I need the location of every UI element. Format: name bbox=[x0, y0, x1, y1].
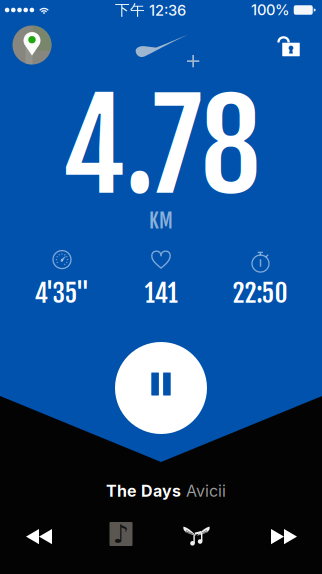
button[interactable]: Pause bbox=[115, 342, 207, 434]
button[interactable]: Previous track bbox=[15, 518, 63, 556]
staticText: Avicii bbox=[186, 481, 226, 501]
staticText: 4'35" bbox=[34, 277, 89, 309]
button[interactable]: Map bbox=[6, 19, 57, 70]
button[interactable]: Next track bbox=[260, 518, 308, 556]
staticText: 下午 12:36 bbox=[115, 1, 186, 19]
staticText: 22:50 bbox=[232, 277, 287, 309]
staticText: 100% bbox=[251, 1, 290, 19]
staticText: ♪ bbox=[113, 519, 129, 549]
staticText: 141 bbox=[144, 277, 177, 309]
button[interactable]: Unlock bbox=[267, 25, 303, 58]
button[interactable]: Music bbox=[168, 513, 211, 551]
staticText: 4.78 bbox=[61, 72, 260, 222]
staticText: The Days bbox=[106, 481, 181, 501]
staticText: KM bbox=[149, 208, 173, 233]
